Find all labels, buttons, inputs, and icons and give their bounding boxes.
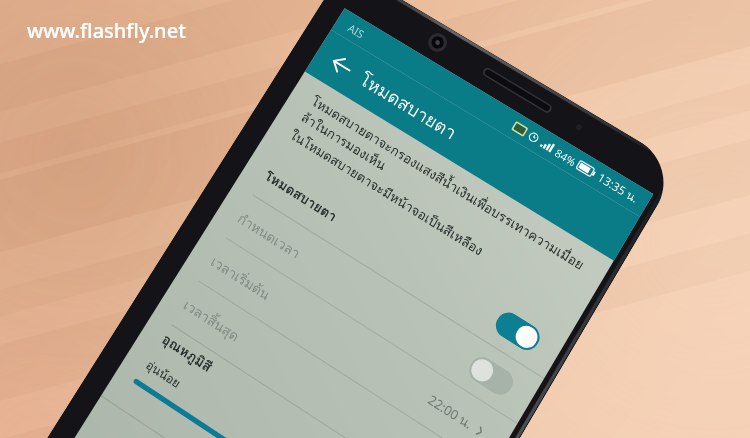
staticText: ในโหมดสบายตาจะมีหน้าจอเป็นสีเหลือง: [286, 125, 488, 261]
staticText: โหมดสบายตา: [354, 65, 462, 147]
button[interactable]: Back: [311, 35, 371, 95]
button[interactable]: โหมดสบายตา: [235, 141, 570, 378]
button[interactable]: Turn on: [464, 352, 518, 400]
staticText: 07:00 น.: [396, 435, 450, 438]
staticText: โหมดสบายตา: [261, 165, 342, 227]
staticText: เวลาสิ้นสุด: [180, 294, 244, 347]
button[interactable]: เวลาสิ้นสุด: [153, 270, 490, 438]
staticText: www.flashfly.net: [27, 17, 186, 44]
button[interactable]: กำหนดเวลา: [208, 184, 544, 423]
staticText: โหมดสบายตาจะกรองแสงสีน้ำเงินเพื่อบรรเทาค…: [297, 91, 589, 293]
button[interactable]: Turn off: [491, 308, 544, 355]
staticText: กำหนดเวลา: [234, 207, 305, 263]
staticText: อุ่นน้อย: [142, 355, 185, 393]
staticText: 84%: [552, 145, 579, 170]
staticText: AIS: [345, 20, 367, 41]
staticText: 13:35 น.: [594, 169, 642, 208]
staticText: 22:00 น.: [424, 390, 477, 435]
staticText: อุณหภูมิสี: [158, 328, 217, 377]
staticText: เวลาเริ่มต้น: [207, 250, 275, 305]
button[interactable]: เวลาเริ่มต้น: [181, 227, 517, 438]
